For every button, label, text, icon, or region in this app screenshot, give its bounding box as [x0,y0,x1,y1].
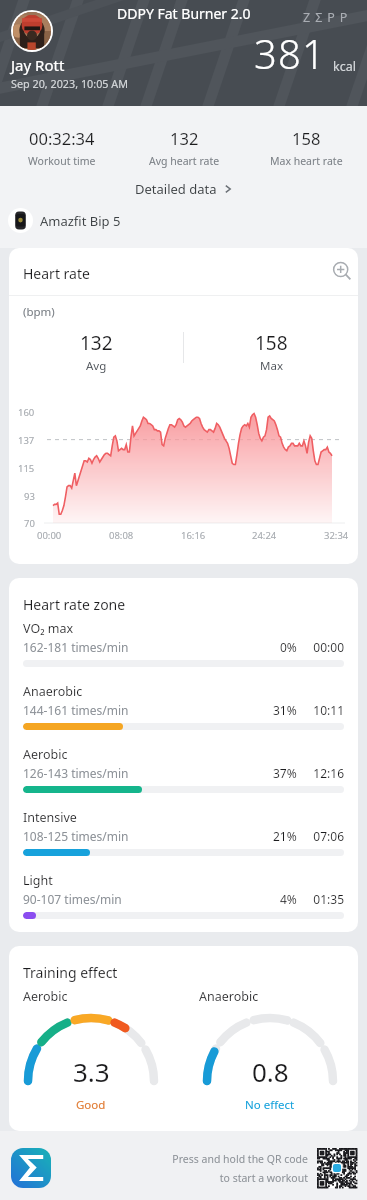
staticText: 90-107 times/min [23,891,122,907]
staticText: Good [76,1097,106,1113]
staticText: 0% [280,639,297,655]
staticText: 108-125 times/min [23,828,129,844]
staticText: Max [260,358,283,374]
staticText: Intensive [23,809,77,826]
staticText: Heart rate zone [23,595,126,614]
staticText: 70 [24,517,35,530]
staticText: ZΣPP [303,9,353,26]
staticText: 162-181 times/min [23,639,129,655]
staticText: Training effect [23,963,118,982]
staticText: Press and hold the QR code [172,1152,308,1166]
staticText: 3.3 [73,1054,110,1089]
staticText: DDPY Fat Burner 2.0 [117,4,251,23]
staticText: 00:32:34 [29,127,95,149]
staticText: to start a workout [219,1171,308,1185]
staticText: Amazfit Bip 5 [40,212,121,230]
staticText: 160 [18,406,35,419]
staticText: Aerobic [23,988,68,1005]
staticText: 32:34 [324,529,349,542]
staticText: kcal [333,58,356,75]
staticText: Detailed data [135,180,217,198]
staticText: 4% [280,891,297,907]
staticText: Avg heart rate [149,154,220,168]
staticText: 126-143 times/min [23,765,129,781]
button[interactable]: Zepp app [11,1148,51,1188]
staticText: 0.8 [252,1054,289,1089]
staticText: 132 [170,127,199,149]
staticText: 144-161 times/min [23,702,129,718]
staticText: Light [23,872,53,889]
staticText: Jay Rott [11,55,65,75]
staticText: Anaerobic [23,683,83,700]
staticText: 158 [255,330,288,356]
staticText: No effect [245,1097,295,1113]
staticText: 12:16 [308,765,344,781]
staticText: 21% [273,828,297,844]
staticText: Sep 20, 2023, 10:05 AM [11,76,129,91]
button[interactable]: Zoom in [331,260,353,282]
staticText: 31% [273,702,297,718]
staticText: 24:24 [252,529,277,542]
staticText: 381 [254,26,327,80]
staticText: 10:11 [308,702,344,718]
staticText: Workout time [28,154,96,168]
staticText: 16:16 [181,529,206,542]
staticText: 01:35 [308,891,344,907]
staticText: Heart rate [23,264,90,283]
staticText: 158 [292,127,321,149]
staticText: 37% [273,765,297,781]
staticText: VO₂ max [23,620,74,637]
staticText: 00:00 [308,639,344,655]
staticText: 132 [80,330,113,356]
staticText: (bpm) [23,304,55,320]
staticText: Aerobic [23,746,68,763]
staticText: 08:08 [109,529,134,542]
staticText: 115 [18,462,35,475]
staticText: 137 [18,434,35,447]
staticText: Max heart rate [270,154,343,168]
staticText: 07:06 [308,828,344,844]
staticText: Anaerobic [199,988,259,1005]
staticText: 93 [24,490,35,503]
staticText: Avg [86,358,107,374]
staticText: 00:00 [37,529,62,542]
button[interactable]: Detailed data [0,180,367,198]
